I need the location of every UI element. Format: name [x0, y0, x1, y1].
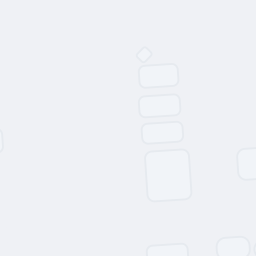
- button[interactable]: Stand: [141, 125, 182, 145]
- button[interactable]: Activity badge: [143, 49, 154, 62]
- button[interactable]: Move: [142, 67, 181, 89]
- button[interactable]: More: [246, 249, 256, 256]
- button[interactable]: Exercise: [140, 97, 181, 118]
